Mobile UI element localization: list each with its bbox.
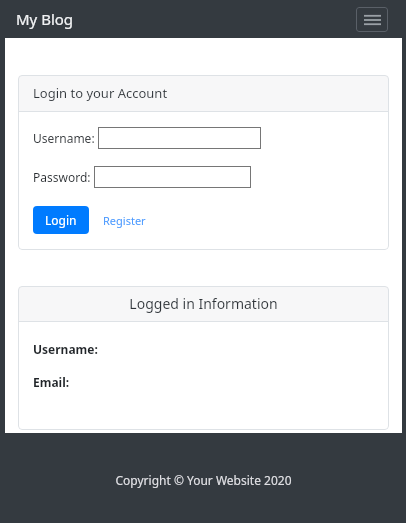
staticText: Login to your Account xyxy=(33,84,168,102)
button[interactable]: Login xyxy=(33,206,89,234)
staticText: Logged in Information xyxy=(129,294,278,313)
staticText: Email: xyxy=(33,374,70,390)
staticText: Login xyxy=(45,212,77,228)
button[interactable]: Toggle navigation xyxy=(356,7,388,32)
button[interactable] xyxy=(94,166,251,188)
staticText: Copyright © Your Website 2020 xyxy=(115,472,292,488)
staticText: Register xyxy=(103,213,146,228)
staticText: Password: xyxy=(33,169,91,185)
button[interactable]: My Blog xyxy=(16,9,74,29)
staticText: Username: xyxy=(33,341,98,357)
staticText: Username: xyxy=(33,130,95,146)
button[interactable]: Register xyxy=(101,209,148,232)
button[interactable] xyxy=(98,127,261,149)
